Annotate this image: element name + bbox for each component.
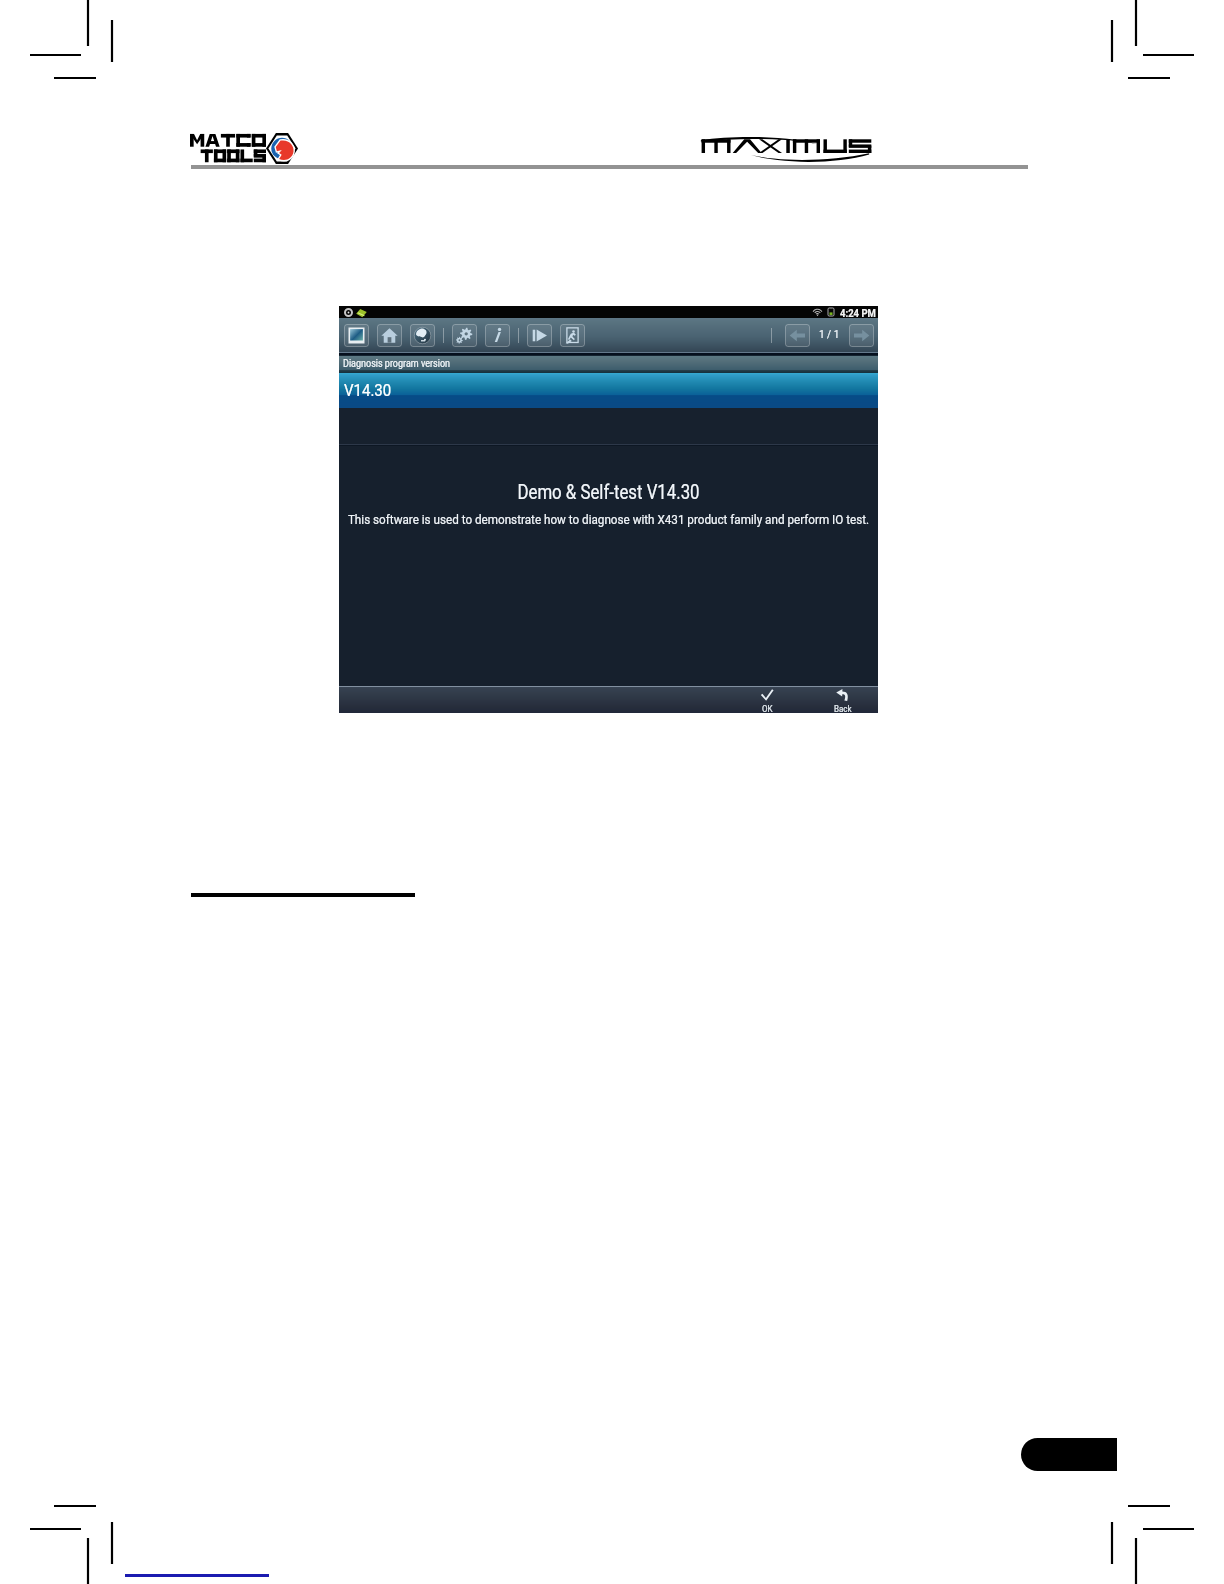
button[interactable]: Web browser (410, 324, 435, 347)
staticText: Demo & Self-test V14.30 (339, 480, 878, 504)
staticText: V14.30 (344, 380, 392, 400)
button[interactable]: Information (485, 324, 510, 347)
staticText: Diagnosis program version (343, 358, 451, 371)
button[interactable]: Back (821, 687, 865, 713)
staticText: OK (762, 704, 773, 714)
button[interactable]: OK (745, 687, 789, 713)
button[interactable]: Home (377, 324, 402, 347)
staticText: Back (834, 704, 852, 714)
staticText: 1 / 1 (819, 329, 840, 341)
staticText: 4:24 PM (840, 306, 876, 319)
button[interactable]: Previous page (785, 324, 810, 347)
button[interactable]: V14.30 (339, 373, 878, 408)
staticText: This software is used to demonstrate how… (339, 511, 878, 527)
button[interactable]: Screenshot (344, 324, 369, 347)
button[interactable]: Next page (849, 324, 874, 347)
button[interactable]: Play (527, 324, 552, 347)
button[interactable]: Settings (452, 324, 477, 347)
button[interactable]: Exit (560, 324, 585, 347)
